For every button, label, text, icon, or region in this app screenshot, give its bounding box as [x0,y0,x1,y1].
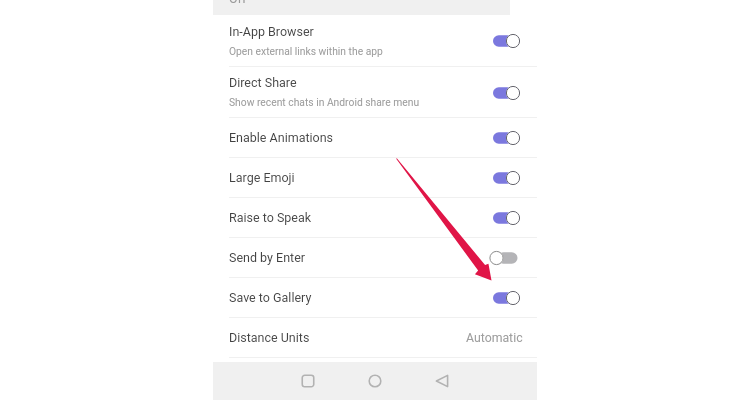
staticText: Direct Share [229,75,297,90]
staticText: Open external links within the app [229,45,383,57]
button[interactable]: Raise to Speak [213,198,537,238]
staticText: Send by Enter [229,250,306,265]
button[interactable]: Send by Enter [213,238,537,278]
button[interactable]: Off [213,0,510,15]
button[interactable]: Recents [294,367,322,395]
staticText: Show recent chats in Android share menu [229,96,420,108]
button[interactable]: Enable Animations [213,118,537,158]
button[interactable]: Off [491,248,520,268]
button[interactable]: On [491,128,520,148]
button[interactable]: Distance Units [213,318,537,358]
staticText: Save to Gallery [229,290,312,305]
button[interactable]: On [491,168,520,188]
button[interactable]: On [491,83,520,103]
staticText: In-App Browser [229,24,314,39]
staticText: Raise to Speak [229,210,312,225]
staticText: Enable Animations [229,130,334,145]
staticText: Off [229,0,247,6]
button[interactable]: Direct Share [213,67,537,118]
button[interactable]: On [491,31,520,51]
button[interactable]: Save to Gallery [213,278,537,318]
button[interactable]: Home [361,367,389,395]
button[interactable]: In-App Browser [213,15,537,67]
button[interactable]: Large Emoji [213,158,537,198]
button[interactable]: On [491,208,520,228]
staticText: Distance Units [229,330,310,345]
staticText: Large Emoji [229,170,295,185]
button[interactable]: Back [428,367,456,395]
button[interactable]: On [491,288,520,308]
staticText: Automatic [466,331,523,345]
